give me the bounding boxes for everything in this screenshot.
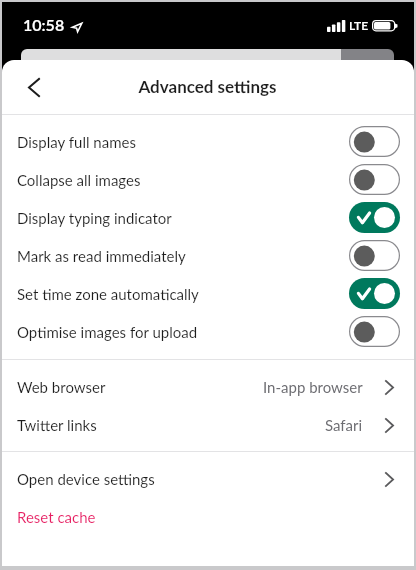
staticText: Set time zone automatically	[17, 285, 199, 303]
staticText: Display typing indicator	[17, 209, 172, 227]
staticText: Web browser	[17, 378, 106, 396]
staticText: Advanced settings	[138, 76, 277, 96]
button[interactable]: Display typing indicator	[2, 198, 414, 236]
button[interactable]: Optimise images for upload	[2, 312, 414, 350]
button[interactable]: Back	[12, 65, 56, 109]
button[interactable]: Reset cache	[2, 498, 414, 536]
staticText: Safari	[325, 416, 363, 434]
staticText: Reset cache	[17, 508, 96, 526]
button[interactable]: Collapse all images	[2, 160, 414, 198]
staticText: 10:58	[23, 15, 65, 34]
button[interactable]: Display full names	[2, 122, 414, 160]
staticText: Open device settings	[17, 470, 155, 488]
other: Location	[72, 23, 82, 32]
button[interactable]: Web browser	[2, 368, 414, 406]
staticText: Optimise images for upload	[17, 323, 198, 341]
button[interactable]: Set time zone automatically	[2, 274, 414, 312]
button[interactable]: Mark as read immediately	[2, 236, 414, 274]
staticText: Mark as read immediately	[17, 247, 186, 265]
button[interactable]: Open device settings	[2, 460, 414, 498]
staticText: In-app browser	[263, 378, 363, 396]
staticText: LTE	[349, 18, 369, 32]
staticText: Collapse all images	[17, 171, 141, 189]
staticText: Display full names	[17, 133, 136, 151]
staticText: Twitter links	[17, 416, 97, 434]
button[interactable]: Twitter links	[2, 406, 414, 444]
